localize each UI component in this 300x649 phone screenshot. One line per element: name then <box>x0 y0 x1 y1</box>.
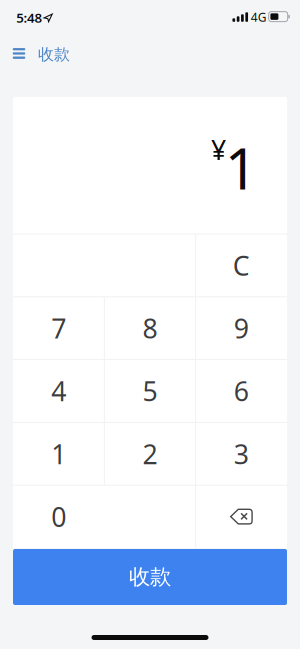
button[interactable]: 5 <box>104 360 196 422</box>
button[interactable]: 2 <box>104 422 196 485</box>
button[interactable]: 1 <box>13 422 104 485</box>
button[interactable]: 收款 <box>13 549 287 605</box>
staticText: 9 <box>234 310 249 346</box>
button[interactable]: C <box>196 234 287 297</box>
staticText: 7 <box>51 310 66 346</box>
button[interactable]: 6 <box>196 360 287 422</box>
staticText: 0 <box>51 499 66 534</box>
staticText: 4G <box>251 9 267 25</box>
button[interactable] <box>196 485 287 548</box>
staticText: 收款 <box>38 45 70 64</box>
button[interactable]: 8 <box>104 297 196 360</box>
button[interactable]: 9 <box>196 297 287 360</box>
staticText: ¥ <box>211 132 226 167</box>
staticText: 1 <box>225 129 258 205</box>
staticText: 8 <box>142 310 157 346</box>
staticText: 5:48 <box>16 9 42 26</box>
button[interactable]: 7 <box>13 297 104 360</box>
button[interactable]: 0 <box>13 485 196 548</box>
staticText: 4 <box>51 373 66 409</box>
button[interactable] <box>11 47 27 60</box>
staticText: 2 <box>142 436 157 471</box>
staticText: 收款 <box>129 564 171 590</box>
button[interactable]: 3 <box>196 422 287 485</box>
staticText: C <box>233 248 250 283</box>
staticText: 5 <box>142 373 157 409</box>
staticText: 6 <box>234 373 249 409</box>
staticText: 1 <box>51 436 66 471</box>
button[interactable]: 4 <box>13 360 104 422</box>
staticText: 3 <box>234 436 249 471</box>
